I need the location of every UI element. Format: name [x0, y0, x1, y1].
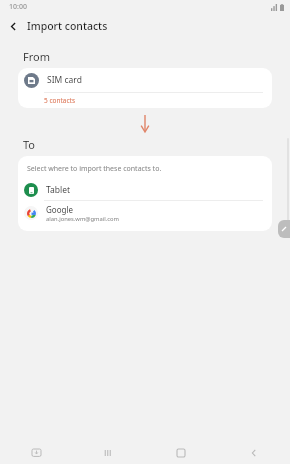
staticText: alan.jones.wm@gmail.com [46, 215, 120, 223]
button[interactable]: Hide keyboard [0, 442, 72, 464]
staticText: From [23, 49, 50, 64]
staticText: 5 contacts [44, 96, 76, 105]
staticText: Google [46, 204, 73, 215]
button[interactable]: Google [18, 201, 272, 225]
button[interactable]: Edge panel [278, 220, 290, 238]
button[interactable]: SIM card [18, 68, 272, 92]
button[interactable]: Home [144, 442, 217, 464]
button[interactable]: Tablet [18, 180, 272, 200]
staticText: 10:00 [9, 2, 27, 12]
staticText: Import contacts [27, 19, 108, 33]
staticText: Tablet [46, 184, 71, 196]
staticText: SIM card [47, 74, 82, 86]
button[interactable]: Recents [72, 442, 144, 464]
staticText: Select where to import these contacts to… [27, 164, 162, 174]
staticText: To [23, 137, 36, 152]
button[interactable]: Back [217, 442, 290, 464]
button[interactable]: Back [4, 17, 22, 35]
